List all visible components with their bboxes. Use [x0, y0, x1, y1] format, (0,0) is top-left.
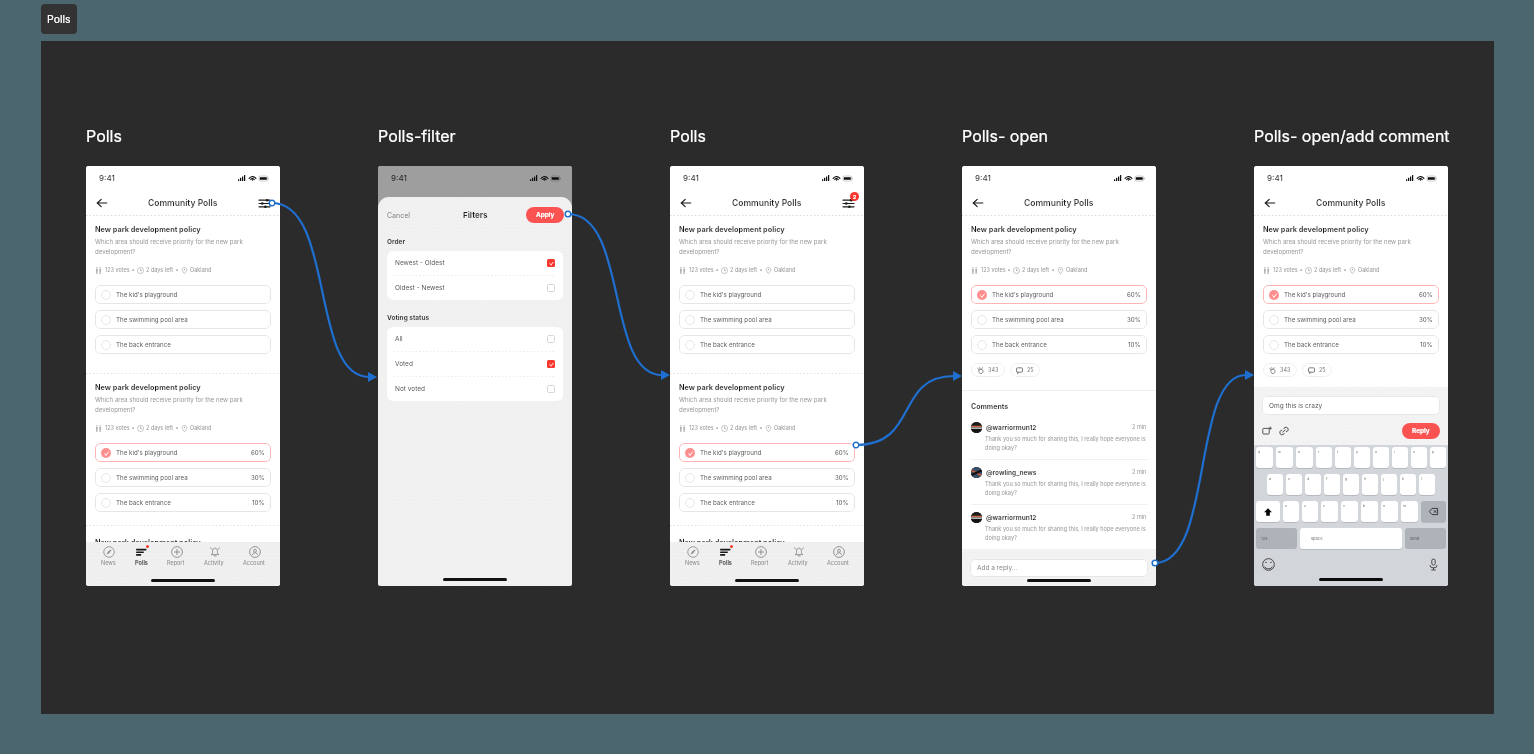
button[interactable]: Account	[239, 543, 269, 569]
staticText: 9:41	[391, 173, 407, 183]
button[interactable]: Add a reply...	[970, 559, 1148, 577]
button[interactable]: x	[1302, 501, 1318, 522]
button[interactable]: The swimming pool area	[95, 310, 271, 329]
button[interactable]: The swimming pool area	[679, 468, 855, 487]
staticText: Polls	[670, 126, 706, 145]
button[interactable]: l	[1419, 474, 1435, 495]
button[interactable]: The kid's playground	[1263, 285, 1439, 304]
button[interactable]: space	[1300, 528, 1402, 549]
button[interactable]: Voice input	[1427, 558, 1440, 571]
button[interactable]: The back entrance	[1263, 335, 1439, 354]
button[interactable]: Shift	[1256, 501, 1280, 522]
button[interactable]: d	[1305, 474, 1321, 495]
button[interactable]: 343	[1263, 363, 1297, 377]
button[interactable]: y	[1354, 447, 1370, 468]
button[interactable]: z	[1283, 501, 1299, 522]
button[interactable]: b	[1361, 501, 1378, 522]
button[interactable]: The swimming pool area	[679, 310, 855, 329]
button[interactable]: Voted	[387, 352, 563, 376]
button[interactable]: News	[97, 543, 120, 569]
staticText: space	[1311, 536, 1323, 541]
button[interactable]: a	[1267, 474, 1283, 495]
button[interactable]: The kid's playground	[95, 443, 271, 462]
button[interactable]: Filters	[840, 195, 856, 211]
button[interactable]: All	[387, 327, 563, 351]
button[interactable]: e	[1296, 447, 1313, 468]
button[interactable]: k	[1400, 474, 1416, 495]
button[interactable]: Newest - Oldest	[387, 251, 563, 275]
button[interactable]: h	[1362, 474, 1378, 495]
button[interactable]: Oldest - Newest	[387, 276, 563, 300]
button[interactable]: send	[1405, 528, 1446, 549]
button[interactable]: News	[681, 543, 704, 569]
button[interactable]: r	[1316, 447, 1332, 468]
button[interactable]: Cancel	[387, 211, 410, 219]
button[interactable]: Filters	[256, 195, 272, 211]
staticText: Polls- open	[962, 126, 1048, 145]
button[interactable]: Omg this is crazy	[1262, 396, 1440, 415]
button[interactable]: Report	[163, 543, 189, 569]
button[interactable]: The kid's playground	[679, 285, 855, 304]
button[interactable]: The swimming pool area	[95, 468, 271, 487]
button[interactable]: The back entrance	[971, 335, 1147, 354]
button[interactable]: Report	[747, 543, 773, 569]
button[interactable]: The swimming pool area	[1263, 310, 1439, 329]
button[interactable]: Activity	[200, 543, 228, 569]
staticText: 10%	[1420, 341, 1433, 349]
staticText: 10%	[252, 499, 265, 507]
staticText: n	[1383, 504, 1386, 508]
button[interactable]: g	[1343, 474, 1359, 495]
button[interactable]: u	[1373, 447, 1389, 468]
button[interactable]: Not voted	[387, 377, 563, 401]
button[interactable]: j	[1381, 474, 1397, 495]
button[interactable]: q	[1256, 447, 1273, 468]
button[interactable]: 25	[1302, 363, 1332, 377]
button[interactable]: The back entrance	[95, 493, 271, 512]
button[interactable]: f	[1324, 474, 1340, 495]
button[interactable]: m	[1401, 501, 1418, 522]
button[interactable]: w	[1276, 447, 1293, 468]
button[interactable]: Emoji	[1262, 558, 1275, 571]
button[interactable]: 25	[1010, 363, 1040, 377]
button[interactable]: Back	[678, 195, 694, 211]
button[interactable]: Back	[970, 195, 986, 211]
button[interactable]: Apply	[526, 207, 564, 223]
button[interactable]: Account	[823, 543, 853, 569]
button[interactable]: Attach link	[1279, 426, 1289, 436]
staticText: The swimming pool area	[116, 474, 188, 482]
button[interactable]: o	[1411, 447, 1427, 468]
button[interactable]: The kid's playground	[95, 285, 271, 304]
button[interactable]: p	[1430, 447, 1446, 468]
button[interactable]: Reply	[1402, 423, 1440, 439]
staticText: Thank you so much for sharing this, I re…	[985, 481, 1147, 496]
button[interactable]: The back entrance	[95, 335, 271, 354]
staticText: The kid's playground	[700, 291, 762, 299]
button[interactable]: Polls	[41, 4, 77, 34]
staticText: Polls- open/add comment	[1254, 126, 1450, 145]
button[interactable]: Back	[1262, 195, 1278, 211]
staticText: Oakland	[1066, 267, 1088, 274]
button[interactable]: The kid's playground	[679, 443, 855, 462]
staticText: Voted	[395, 360, 413, 368]
button[interactable]: 343	[971, 363, 1005, 377]
button[interactable]: Backspace	[1421, 501, 1446, 522]
button[interactable]: 123	[1256, 528, 1297, 549]
button[interactable]: i	[1392, 447, 1408, 468]
button[interactable]: c	[1321, 501, 1338, 522]
button[interactable]: The swimming pool area	[971, 310, 1147, 329]
button[interactable]: The kid's playground	[971, 285, 1147, 304]
button[interactable]: s	[1286, 474, 1302, 495]
button[interactable]: Back	[94, 195, 110, 211]
button[interactable]: t	[1335, 447, 1351, 468]
staticText: New park development policy	[95, 538, 201, 542]
button[interactable]: Add photo	[1262, 426, 1272, 436]
button[interactable]: The back entrance	[679, 493, 855, 512]
button[interactable]: n	[1381, 501, 1398, 522]
staticText: Which area should receive priority for t…	[679, 396, 855, 414]
button[interactable]: v	[1341, 501, 1358, 522]
button[interactable]: Polls	[131, 543, 152, 569]
button[interactable]: Polls	[715, 543, 736, 569]
button[interactable]: The back entrance	[679, 335, 855, 354]
button[interactable]: Activity	[784, 543, 812, 569]
staticText: 123 votes	[689, 425, 714, 432]
